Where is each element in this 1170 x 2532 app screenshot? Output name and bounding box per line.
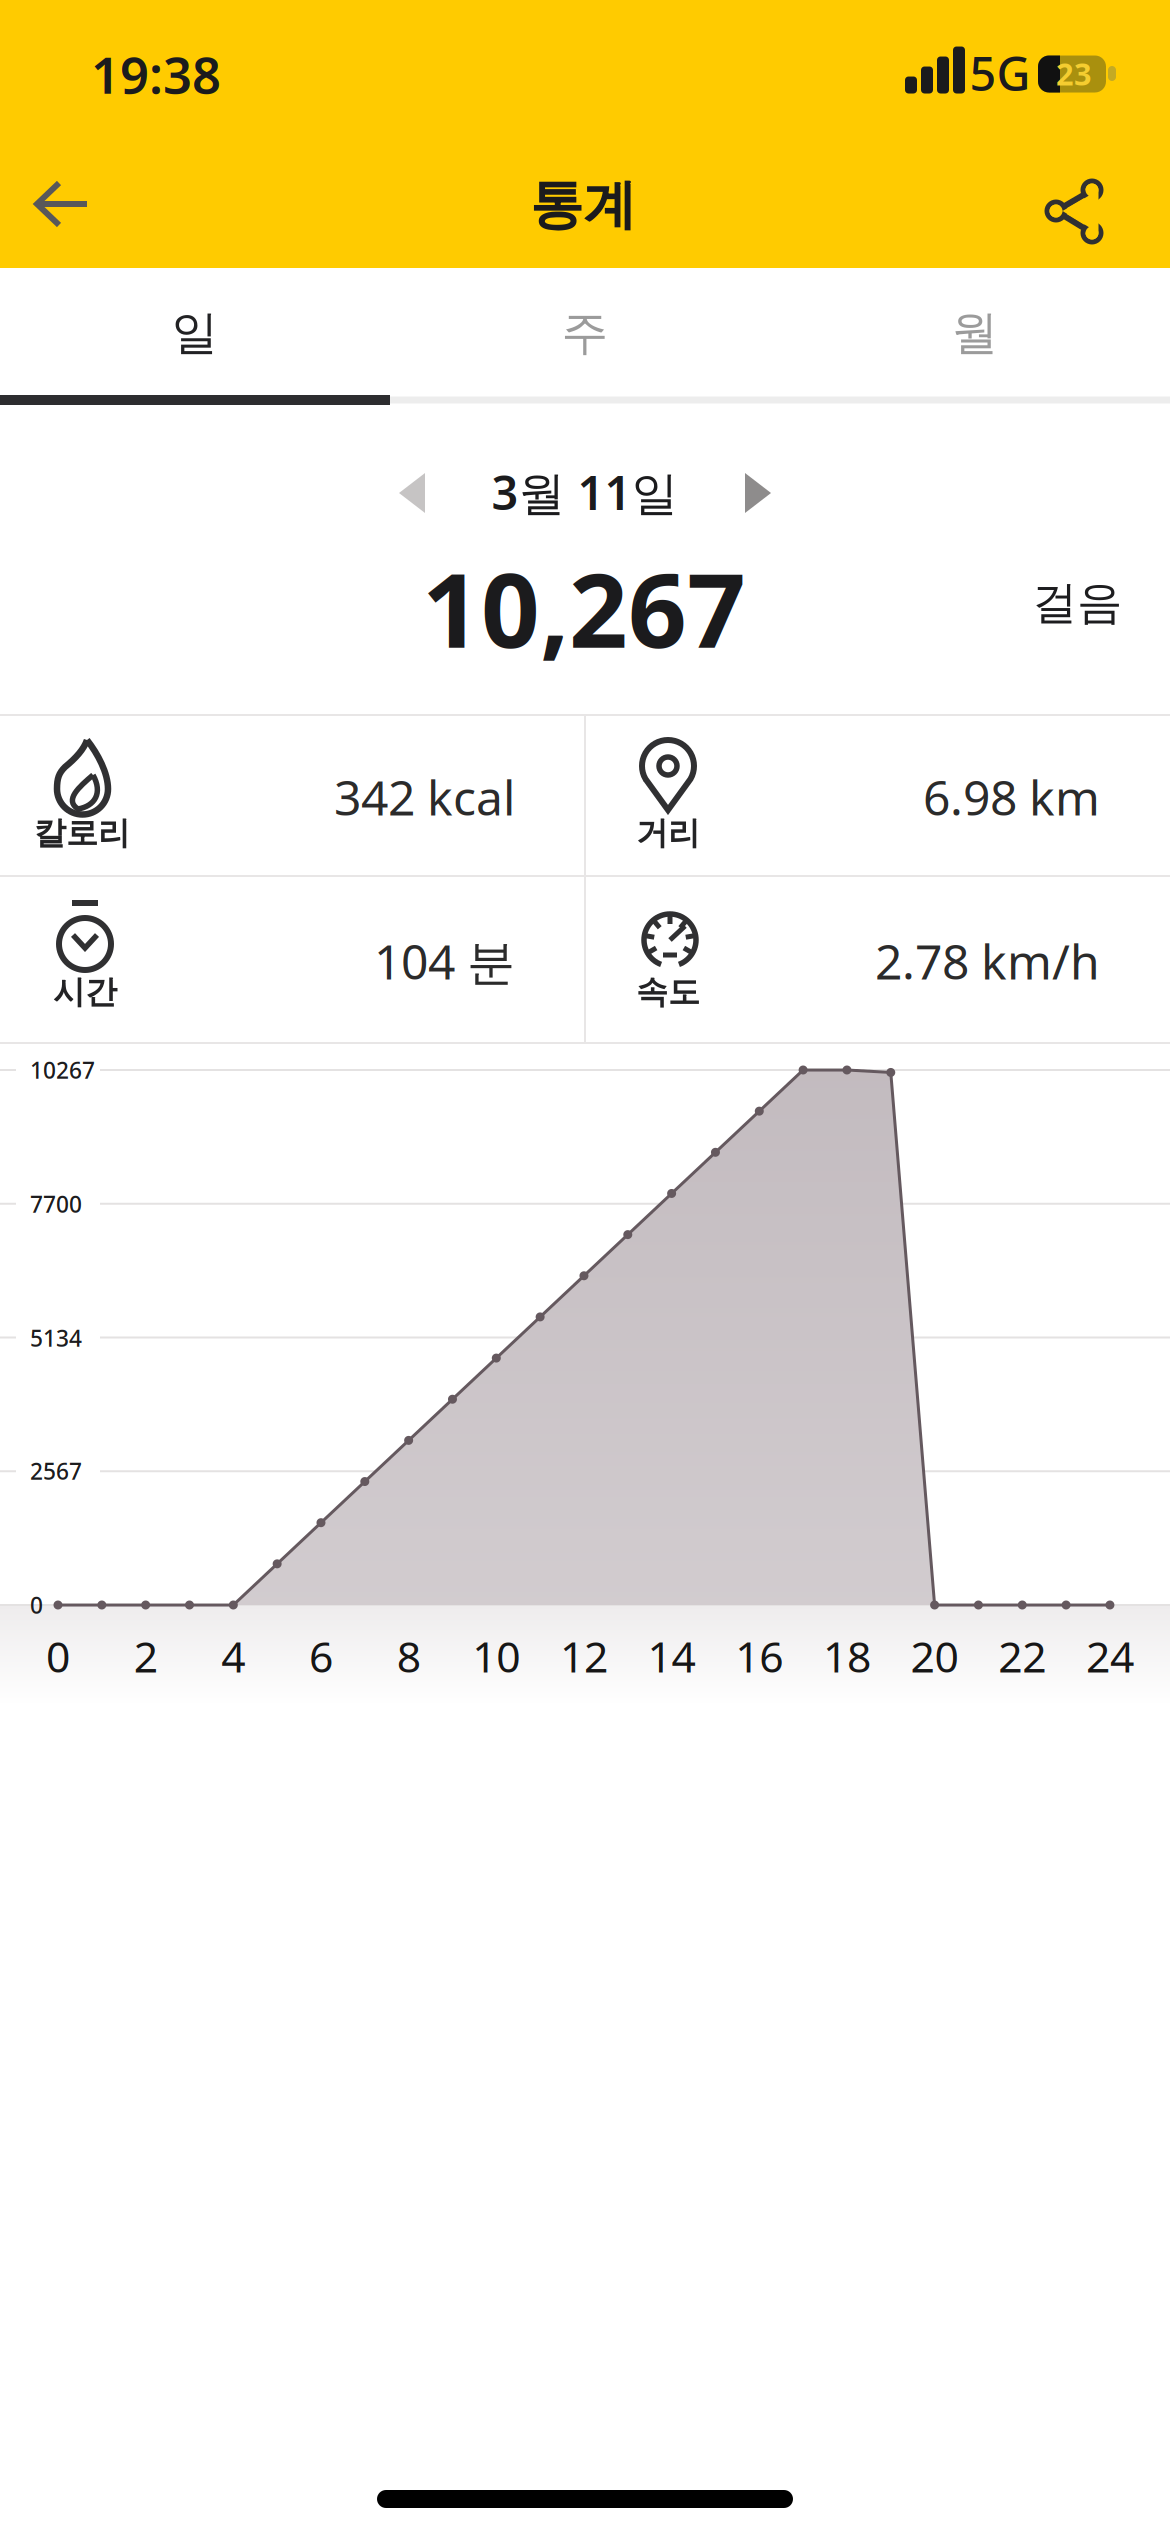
button[interactable]: 일 bbox=[0, 270, 390, 396]
staticText: 18 bbox=[823, 1628, 871, 1684]
button[interactable]: Back bbox=[17, 164, 107, 244]
staticText: 6.98 km bbox=[923, 765, 1100, 829]
button[interactable]: 주 bbox=[390, 270, 780, 396]
staticText: 19:38 bbox=[91, 40, 221, 108]
staticText: 3월 11일 bbox=[491, 461, 678, 523]
staticText: 월 bbox=[951, 304, 998, 362]
staticText: 10 bbox=[472, 1628, 520, 1684]
staticText: 12 bbox=[560, 1628, 608, 1684]
staticText: 2567 bbox=[30, 1456, 82, 1486]
staticText: 20 bbox=[911, 1628, 959, 1684]
staticText: 23 bbox=[1056, 53, 1092, 94]
staticText: 0 bbox=[46, 1628, 70, 1684]
staticText: 10,267 bbox=[422, 540, 746, 676]
staticText: 속도 bbox=[636, 972, 700, 1012]
button[interactable]: Previous day bbox=[399, 473, 425, 513]
staticText: 14 bbox=[648, 1628, 696, 1684]
staticText: 칼로리 bbox=[34, 813, 130, 853]
staticText: 5134 bbox=[30, 1323, 82, 1353]
staticText: 5G bbox=[969, 42, 1030, 104]
staticText: 342 kcal bbox=[334, 765, 515, 829]
staticText: 4 bbox=[221, 1628, 245, 1684]
staticText: 통계 bbox=[530, 172, 636, 238]
staticText: 거리 bbox=[636, 813, 700, 853]
staticText: 2 bbox=[134, 1628, 158, 1684]
staticText: 2.78 km/h bbox=[875, 929, 1100, 993]
staticText: 10267 bbox=[30, 1055, 95, 1085]
staticText: 7700 bbox=[30, 1189, 82, 1219]
staticText: 일 bbox=[171, 304, 218, 362]
staticText: 0 bbox=[30, 1590, 43, 1620]
button[interactable]: Next day bbox=[745, 473, 771, 513]
staticText: 8 bbox=[397, 1628, 421, 1684]
staticText: 16 bbox=[735, 1628, 783, 1684]
staticText: 24 bbox=[1086, 1628, 1134, 1684]
button[interactable]: 월 bbox=[780, 270, 1170, 396]
staticText: 주 bbox=[561, 304, 608, 362]
staticText: 걸음 bbox=[1032, 575, 1122, 631]
staticText: 104 분 bbox=[374, 929, 515, 993]
staticText: 시간 bbox=[53, 972, 117, 1012]
staticText: 6 bbox=[309, 1628, 333, 1684]
staticText: 22 bbox=[998, 1628, 1046, 1684]
button[interactable]: Share bbox=[1034, 167, 1114, 247]
